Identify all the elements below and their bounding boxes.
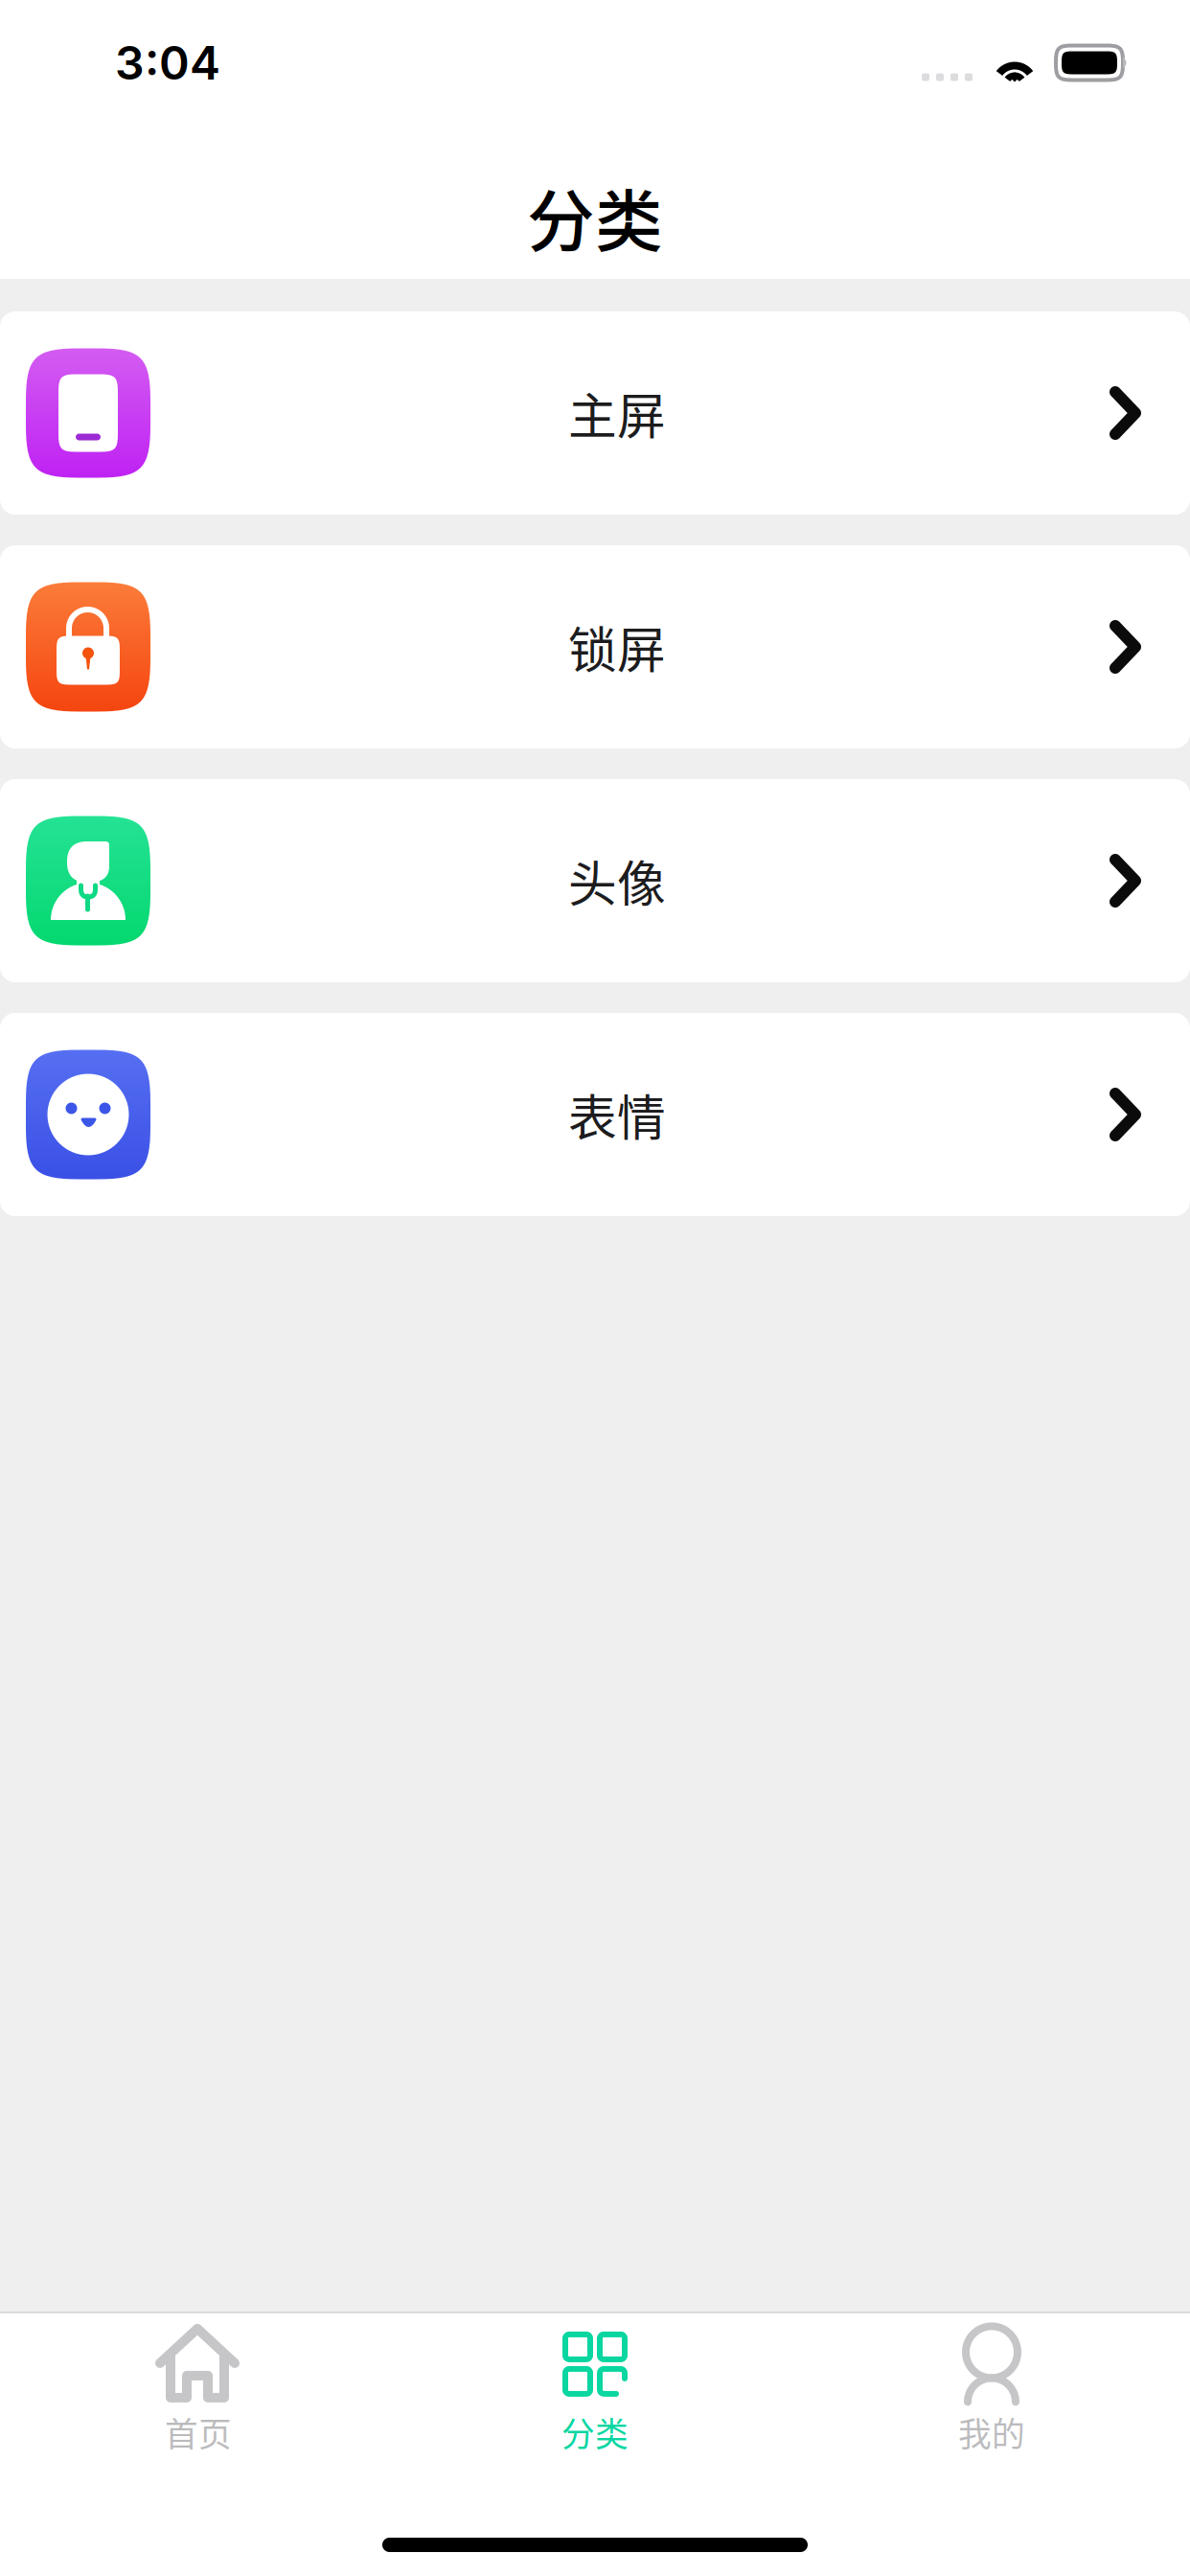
button[interactable]: 分类	[397, 2313, 793, 2463]
staticText: 分类	[561, 2408, 629, 2456]
staticText: 首页	[165, 2408, 232, 2456]
staticText: 分类	[527, 168, 663, 266]
staticText: 主屏	[568, 378, 666, 448]
staticText: 我的	[958, 2408, 1025, 2456]
button[interactable]: 锁屏	[0, 545, 1190, 748]
button[interactable]: 主屏	[0, 311, 1190, 515]
button[interactable]: 表情	[0, 1013, 1190, 1216]
staticText: 锁屏	[568, 612, 666, 682]
staticText: 3:04	[115, 35, 220, 91]
button[interactable]: 头像	[0, 779, 1190, 982]
staticText: 头像	[568, 846, 666, 916]
button[interactable]: 我的	[793, 2313, 1190, 2463]
button[interactable]: 首页	[0, 2313, 397, 2463]
staticText: 表情	[568, 1079, 666, 1150]
